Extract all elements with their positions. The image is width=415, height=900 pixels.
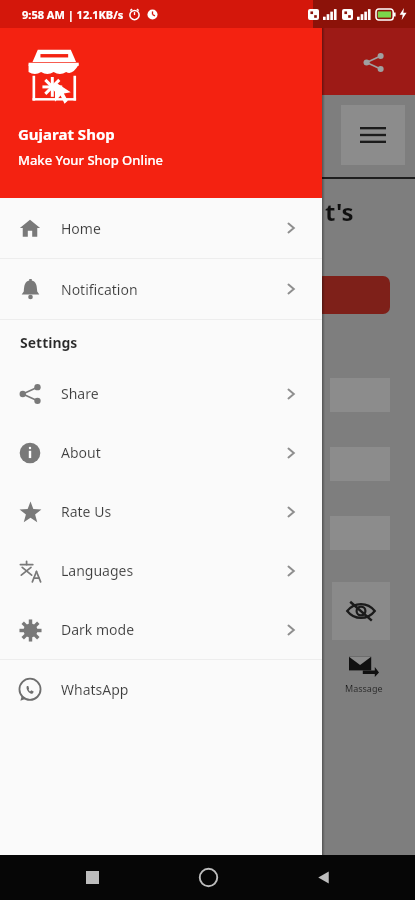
staticText: Share <box>61 384 99 403</box>
button[interactable]: WhatsApp <box>0 660 322 719</box>
button[interactable]: Share <box>0 364 322 423</box>
staticText: About <box>61 443 101 462</box>
staticText: Notification <box>61 280 138 299</box>
staticText: 9:58 AM | 12.1KB/s <box>22 7 124 22</box>
staticText: Settings <box>20 333 78 352</box>
staticText: Make Your Shop Online <box>18 151 164 169</box>
staticText: WhatsApp <box>61 680 129 699</box>
button[interactable]: Open menu <box>341 105 405 165</box>
button[interactable]: Massage <box>332 655 396 694</box>
button[interactable]: Rate Us <box>0 482 322 541</box>
button[interactable]: Dark mode <box>0 600 322 659</box>
staticText: Rate Us <box>61 502 112 521</box>
button[interactable]: Share <box>355 44 391 80</box>
staticText: Gujarat Shop <box>18 124 115 144</box>
staticText: Home <box>61 219 101 238</box>
button[interactable]: Home <box>184 855 232 900</box>
button[interactable] <box>316 276 390 314</box>
button[interactable]: Hide <box>332 582 390 640</box>
button[interactable]: Notification <box>0 259 322 319</box>
button[interactable]: Recent apps <box>68 855 116 900</box>
button[interactable]: Languages <box>0 541 322 600</box>
staticText: Languages <box>61 561 134 580</box>
staticText: Dark mode <box>61 620 135 639</box>
button[interactable]: Home <box>0 198 322 258</box>
button[interactable]: Back <box>299 855 347 900</box>
button[interactable]: About <box>0 423 322 482</box>
staticText: Massage <box>345 682 383 694</box>
staticText: t's <box>325 195 354 228</box>
